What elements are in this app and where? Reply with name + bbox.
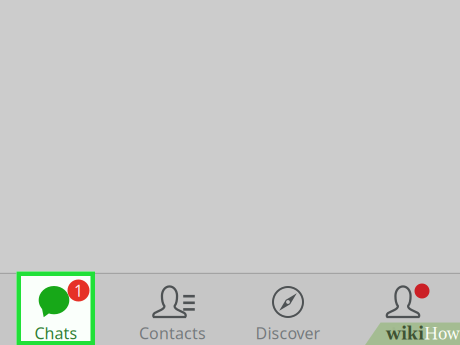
staticText: Me: [391, 322, 415, 344]
button[interactable]: Contacts: [115, 276, 230, 345]
button[interactable]: Discover: [230, 276, 345, 345]
button[interactable]: 1: [0, 276, 113, 345]
staticText: Discover: [255, 322, 320, 344]
staticText: How: [424, 323, 460, 345]
staticText: wiki: [386, 323, 424, 345]
staticText: Chats: [34, 322, 77, 344]
staticText: 1: [74, 280, 83, 301]
staticText: Contacts: [139, 322, 206, 344]
button[interactable]: Me: [345, 276, 460, 345]
